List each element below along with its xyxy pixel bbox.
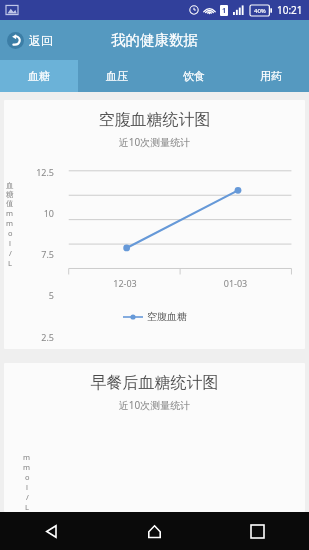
staticText: l	[9, 238, 11, 248]
staticText: 5	[24, 289, 54, 301]
button[interactable]: Back	[0, 512, 103, 550]
button[interactable]: 血压	[78, 60, 155, 92]
staticText: L	[25, 502, 29, 512]
staticText: 空腹血糖统计图	[4, 110, 305, 130]
staticText: 返回	[29, 33, 53, 48]
staticText: 血	[6, 181, 14, 190]
button[interactable]: Recent apps	[206, 512, 309, 550]
staticText: o	[8, 228, 13, 238]
staticText: m	[6, 208, 14, 218]
staticText: 饮食	[183, 69, 205, 83]
staticText: 近10次测量统计	[4, 398, 305, 412]
staticText: 7.5	[24, 248, 54, 260]
staticText: 1	[222, 6, 227, 16]
staticText: /	[9, 248, 12, 258]
staticText: 血压	[106, 69, 128, 83]
staticText: 值	[6, 199, 14, 208]
staticText: 40%	[254, 7, 266, 15]
staticText: 我的健康数据	[111, 31, 198, 49]
staticText: 空腹血糖	[147, 310, 187, 323]
staticText: 12-03	[70, 277, 180, 289]
staticText: 糖	[6, 190, 14, 199]
staticText: 01-03	[180, 277, 291, 289]
staticText: 10:21	[277, 3, 303, 17]
staticText: m	[23, 462, 31, 472]
staticText: 早餐后血糖统计图	[4, 373, 305, 393]
button[interactable]: Home	[103, 512, 206, 550]
staticText: m	[23, 452, 31, 462]
staticText: 近10次测量统计	[4, 135, 305, 149]
staticText: 10	[24, 207, 54, 219]
button[interactable]: 饮食	[155, 60, 232, 92]
staticText: o	[25, 472, 30, 482]
staticText: 2.5	[24, 331, 54, 343]
button[interactable]: 血糖	[0, 60, 78, 92]
staticText: 用药	[260, 69, 282, 83]
staticText: L	[8, 258, 12, 268]
button[interactable]: 早餐后血糖统计图	[4, 363, 305, 512]
staticText: m	[6, 218, 14, 228]
button[interactable]: 空腹血糖统计图	[4, 100, 305, 349]
button[interactable]: 用药	[232, 60, 309, 92]
staticText: 12.5	[24, 166, 54, 178]
staticText: /	[26, 492, 29, 502]
staticText: 血糖	[28, 69, 50, 83]
button[interactable]: 返回	[0, 26, 63, 55]
staticText: l	[26, 482, 28, 492]
